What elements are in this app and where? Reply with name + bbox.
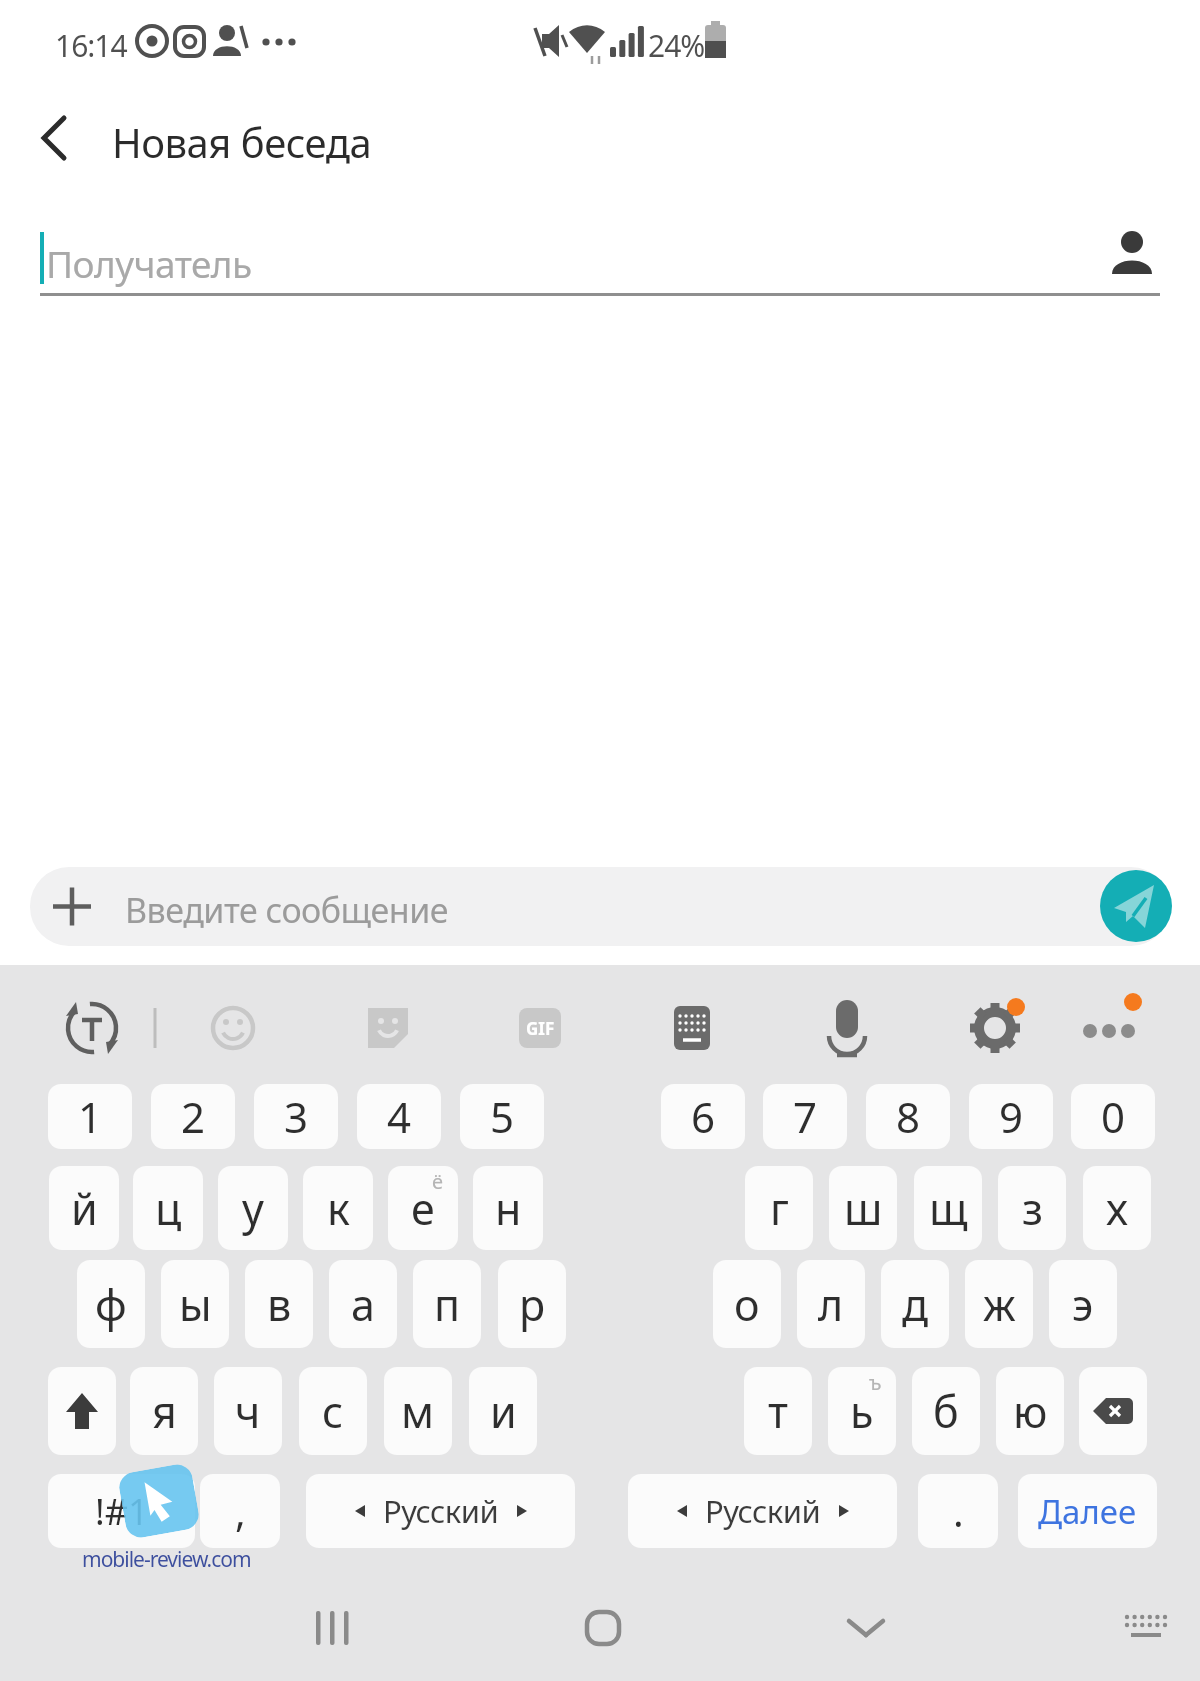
staticText: 4: [387, 1088, 412, 1145]
button[interactable]: р: [498, 1260, 566, 1348]
button[interactable]: [1098, 222, 1162, 286]
button[interactable]: в: [245, 1260, 313, 1348]
button[interactable]: [300, 1598, 372, 1658]
button[interactable]: 5: [460, 1084, 544, 1149]
staticText: щ: [929, 1179, 968, 1238]
button[interactable]: 6: [661, 1084, 745, 1149]
staticText: ы: [179, 1275, 212, 1334]
staticText: ъ: [869, 1369, 882, 1396]
button[interactable]: Введите сообщение: [30, 867, 1170, 946]
button[interactable]: 8: [866, 1084, 950, 1149]
button[interactable]: т: [744, 1367, 812, 1455]
button[interactable]: [48, 1367, 116, 1455]
button[interactable]: ц: [133, 1166, 203, 1250]
button[interactable]: ,: [200, 1474, 280, 1548]
staticText: GIF: [526, 1017, 555, 1040]
button[interactable]: ю: [996, 1367, 1064, 1455]
staticText: я: [152, 1382, 177, 1441]
staticText: 7: [793, 1088, 818, 1145]
button[interactable]: [24, 108, 84, 168]
staticText: Русский: [705, 1490, 821, 1532]
button[interactable]: Далее: [1018, 1474, 1157, 1548]
staticText: 3: [284, 1088, 309, 1145]
staticText: х: [1106, 1179, 1128, 1238]
button[interactable]: Русский: [628, 1474, 897, 1548]
button[interactable]: ь: [828, 1367, 896, 1455]
staticText: л: [818, 1275, 844, 1334]
staticText: 2: [181, 1088, 206, 1145]
button[interactable]: ч: [214, 1367, 282, 1455]
staticText: 24%: [648, 25, 705, 66]
staticText: Введите сообщение: [125, 887, 449, 933]
button[interactable]: д: [881, 1260, 949, 1348]
button[interactable]: Русский: [306, 1474, 575, 1548]
staticText: з: [1022, 1179, 1043, 1238]
staticText: 16:14: [55, 25, 127, 66]
staticText: ,: [235, 1484, 246, 1538]
button[interactable]: е: [388, 1166, 458, 1250]
button[interactable]: й: [49, 1166, 119, 1250]
staticText: р: [519, 1275, 546, 1334]
staticText: ц: [155, 1179, 182, 1238]
button[interactable]: ж: [965, 1260, 1033, 1348]
staticText: т: [768, 1382, 788, 1441]
staticText: Далее: [1038, 1489, 1137, 1534]
staticText: ш: [844, 1179, 883, 1238]
button[interactable]: и: [469, 1367, 537, 1455]
staticText: .: [953, 1484, 964, 1538]
button[interactable]: к: [303, 1166, 373, 1250]
button[interactable]: э: [1049, 1260, 1117, 1348]
button[interactable]: л: [797, 1260, 865, 1348]
button[interactable]: я: [130, 1367, 198, 1455]
button[interactable]: 7: [763, 1084, 847, 1149]
button[interactable]: !#1: [48, 1474, 195, 1548]
staticText: в: [267, 1275, 292, 1334]
button[interactable]: у: [218, 1166, 288, 1250]
staticText: ю: [1013, 1382, 1048, 1441]
button[interactable]: 0: [1071, 1084, 1155, 1149]
button[interactable]: б: [912, 1367, 980, 1455]
button[interactable]: .: [918, 1474, 998, 1548]
staticText: 1: [78, 1088, 103, 1145]
button[interactable]: ы: [161, 1260, 229, 1348]
staticText: Новая беседа: [112, 115, 372, 169]
staticText: Получатель: [46, 238, 252, 288]
button[interactable]: н: [473, 1166, 543, 1250]
staticText: м: [401, 1382, 435, 1441]
button[interactable]: г: [745, 1166, 813, 1250]
staticText: 5: [490, 1088, 515, 1145]
button[interactable]: [567, 1598, 639, 1658]
button[interactable]: 3: [254, 1084, 338, 1149]
button[interactable]: з: [998, 1166, 1066, 1250]
staticText: 6: [691, 1088, 716, 1145]
button[interactable]: [1100, 870, 1172, 942]
staticText: с: [322, 1382, 344, 1441]
button[interactable]: о: [713, 1260, 781, 1348]
button[interactable]: м: [384, 1367, 452, 1455]
staticText: 8: [896, 1088, 921, 1145]
staticText: Русский: [383, 1490, 499, 1532]
staticText: о: [734, 1275, 760, 1334]
button[interactable]: х: [1083, 1166, 1151, 1250]
staticText: й: [71, 1179, 98, 1238]
staticText: ф: [95, 1275, 127, 1334]
button[interactable]: с: [299, 1367, 367, 1455]
staticText: д: [902, 1275, 929, 1334]
button[interactable]: 1: [48, 1084, 132, 1149]
button[interactable]: щ: [914, 1166, 982, 1250]
staticText: !#1: [95, 1487, 149, 1536]
button[interactable]: 4: [357, 1084, 441, 1149]
button[interactable]: [830, 1598, 902, 1658]
button[interactable]: ф: [77, 1260, 145, 1348]
button[interactable]: ш: [829, 1166, 897, 1250]
button[interactable]: [1110, 1598, 1182, 1658]
staticText: п: [434, 1275, 461, 1334]
button[interactable]: 9: [969, 1084, 1053, 1149]
button[interactable]: п: [413, 1260, 481, 1348]
staticText: к: [327, 1179, 350, 1238]
staticText: н: [495, 1179, 522, 1238]
button[interactable]: 2: [151, 1084, 235, 1149]
staticText: ж: [983, 1275, 1016, 1334]
button[interactable]: а: [329, 1260, 397, 1348]
button[interactable]: [1079, 1367, 1147, 1455]
